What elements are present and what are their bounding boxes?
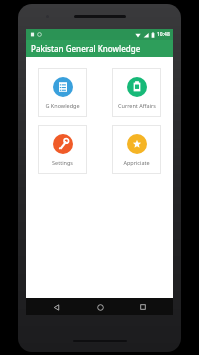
staticText: Pakistan General Knowledge [31,43,141,54]
button[interactable]: Back [48,299,64,315]
button[interactable]: G Knowledge [38,68,87,117]
staticText: 10:48 [157,31,170,38]
button[interactable]: Current Affairs [112,68,161,117]
button[interactable]: Home [92,299,108,315]
staticText: G Knowledge [45,102,80,109]
button[interactable]: Settings [38,125,87,174]
button[interactable]: Appriciate [112,125,161,174]
staticText: Current Affairs [118,102,156,109]
button[interactable]: Recent apps [135,299,151,315]
staticText: Settings [52,159,73,166]
staticText: Appriciate [123,159,150,166]
